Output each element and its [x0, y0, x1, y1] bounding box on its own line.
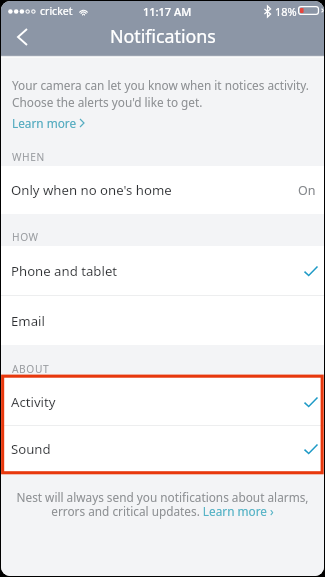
- staticText: Nest will always send you notifications …: [13, 489, 312, 519]
- staticText: Activity: [11, 393, 56, 411]
- button[interactable]: Back: [5, 21, 39, 53]
- staticText: Phone and tablet: [11, 262, 118, 280]
- staticText: Choose the alerts you'd like to get.: [12, 94, 203, 110]
- staticText: Your camera can let you know when it not…: [12, 77, 310, 93]
- button[interactable]: Email: [1, 296, 324, 345]
- staticText: Learn more: [12, 115, 77, 131]
- button[interactable]: Only when no one's home: [1, 166, 324, 214]
- staticText: Notifications: [110, 24, 216, 48]
- staticText: WHEN: [12, 150, 45, 164]
- staticText: 11:17 AM: [143, 4, 192, 19]
- staticText: HOW: [12, 230, 39, 244]
- staticText: ABOUT: [12, 362, 50, 376]
- button[interactable]: Learn more: [12, 115, 84, 131]
- staticText: cricket: [40, 4, 73, 18]
- staticText: Sound: [11, 440, 51, 458]
- staticText: Email: [11, 312, 45, 330]
- button[interactable]: Activity: [1, 378, 324, 425]
- staticText: 18%: [275, 4, 297, 19]
- staticText: Only when no one's home: [11, 181, 172, 199]
- staticText: On: [298, 182, 316, 199]
- button[interactable]: Phone and tablet: [1, 246, 324, 295]
- button[interactable]: Sound: [1, 426, 324, 472]
